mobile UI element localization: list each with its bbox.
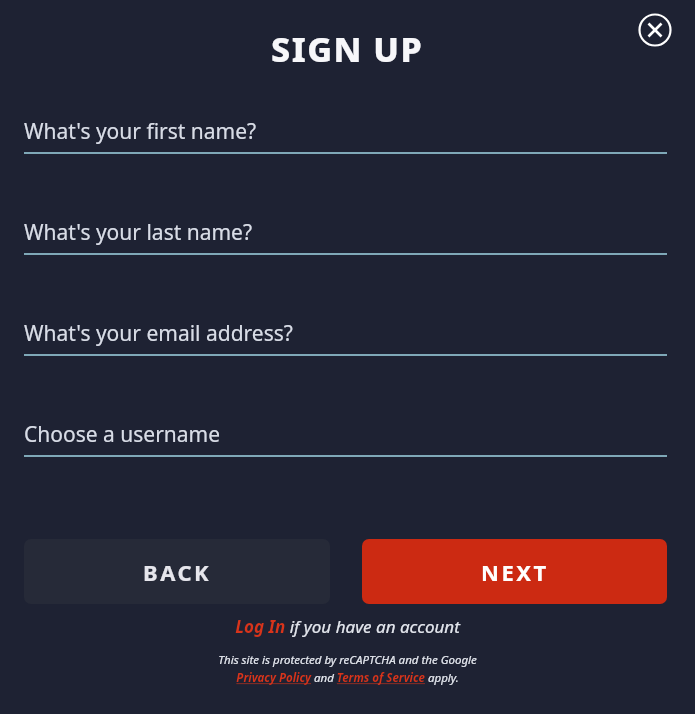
button[interactable]: BACK <box>24 539 330 604</box>
staticText: What's your last name? <box>24 218 253 247</box>
staticText: Privacy Policy and Terms of Service appl… <box>236 670 459 686</box>
button[interactable]: Log In if you have an account <box>235 615 460 638</box>
button[interactable]: Choose a username <box>24 420 667 457</box>
staticText: What's your first name? <box>24 117 257 146</box>
button[interactable]: NEXT <box>362 539 667 604</box>
button[interactable]: What's your last name? <box>24 218 667 255</box>
staticText: SIGN UP <box>271 26 424 72</box>
staticText: What's your email address? <box>24 319 293 348</box>
staticText: This site is protected by reCAPTCHA and … <box>218 652 477 668</box>
staticText: BACK <box>143 557 212 587</box>
staticText: Log In if you have an account <box>235 615 460 638</box>
staticText: Choose a username <box>24 420 221 449</box>
button[interactable]: Privacy Policy and Terms of Service appl… <box>236 670 459 686</box>
button[interactable]: Close <box>634 9 676 51</box>
button[interactable]: What's your email address? <box>24 319 667 356</box>
staticText: NEXT <box>481 557 549 587</box>
button[interactable]: What's your first name? <box>24 117 667 154</box>
